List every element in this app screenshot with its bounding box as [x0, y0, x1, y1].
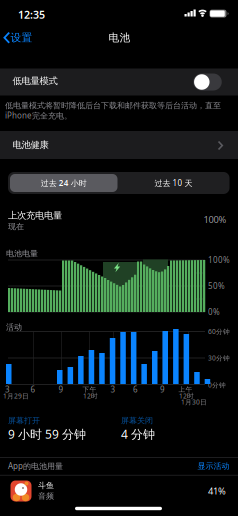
- staticText: 6: [30, 384, 35, 395]
- staticText: 下午: [82, 385, 96, 394]
- staticText: 过去 10 天: [154, 178, 192, 188]
- button[interactable]: 低电量模式: [190, 70, 224, 94]
- staticText: 低电量模式将暂时降低后台下载和邮件获取等后台活动，直至: [5, 101, 221, 110]
- staticText: 低电量模式: [12, 75, 57, 87]
- staticText: 0分钟: [208, 381, 226, 389]
- staticText: 显示活动: [197, 461, 229, 471]
- staticText: 12时: [179, 391, 194, 400]
- staticText: 电池电量: [6, 249, 38, 258]
- staticText: 音频: [38, 491, 54, 501]
- button[interactable]: 过去 24 小时: [8, 172, 119, 194]
- staticText: 9 小时 59 分钟: [8, 426, 86, 442]
- staticText: 斗鱼: [38, 481, 54, 490]
- staticText: 3: [110, 384, 115, 395]
- staticText: 12:35: [18, 7, 45, 22]
- staticText: iPhone完全充电。: [5, 110, 72, 121]
- staticText: 41%: [208, 485, 226, 497]
- button[interactable]: 过去 10 天: [118, 172, 228, 194]
- staticText: 电池: [108, 31, 130, 44]
- button[interactable]: 显示活动: [159, 458, 229, 474]
- staticText: 过去 24 小时: [41, 178, 87, 188]
- staticText: 100%: [208, 255, 230, 265]
- staticText: 1月30日: [181, 398, 207, 406]
- staticText: 0%: [208, 307, 220, 317]
- button[interactable]: 返回设置: [1, 27, 43, 49]
- staticText: 3: [5, 384, 10, 395]
- staticText: 12时: [83, 391, 98, 400]
- staticText: 上午: [178, 385, 192, 394]
- staticText: 4 分钟: [121, 426, 155, 442]
- staticText: 设置: [10, 31, 32, 44]
- button[interactable]: 斗鱼: [0, 473, 238, 507]
- staticText: 9: [160, 384, 165, 395]
- staticText: App的电池用量: [8, 461, 63, 471]
- staticText: 6: [133, 384, 138, 395]
- staticText: 电池健康: [12, 139, 48, 151]
- staticText: 屏幕打开: [8, 416, 40, 425]
- staticText: 上次充电电量: [8, 210, 62, 221]
- staticText: 50%: [208, 281, 225, 291]
- staticText: 现在: [8, 222, 24, 231]
- staticText: 9: [58, 384, 63, 395]
- staticText: 活动: [6, 322, 22, 332]
- staticText: 屏幕关闭: [121, 416, 153, 425]
- staticText: 30分钟: [208, 354, 230, 362]
- staticText: 1月29日: [3, 392, 29, 400]
- staticText: 100%: [203, 213, 226, 226]
- staticText: 60分钟: [208, 327, 230, 336]
- button[interactable]: 电池健康: [0, 131, 238, 159]
